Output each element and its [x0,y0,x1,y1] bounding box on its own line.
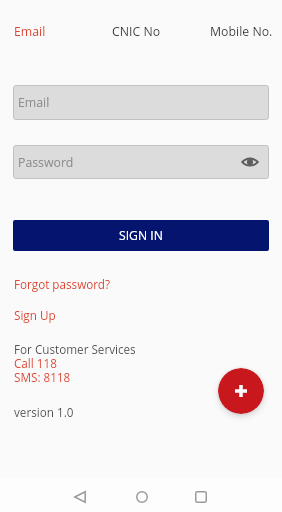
button[interactable]: Recent apps [183,479,219,512]
button[interactable]: Add [218,368,264,414]
button[interactable]: Mobile No. [210,23,273,40]
button[interactable]: SIGN IN [13,220,269,251]
staticText: CNIC No [112,23,161,40]
button[interactable]: CNIC No [112,23,161,40]
button[interactable]: SMS: 8118 [14,369,71,385]
staticText: Mobile No. [210,23,273,40]
staticText: Email [18,94,50,111]
button[interactable]: Call 118 [14,355,57,371]
staticText: Call 118 [14,355,57,371]
button[interactable]: Forgot password? [14,276,111,292]
staticText: Forgot password? [14,276,111,292]
staticText: SMS: 8118 [14,369,71,385]
button[interactable]: Sign Up [14,307,56,323]
staticText: Password [18,154,74,171]
button[interactable]: Password [13,145,269,179]
staticText: Sign Up [14,307,56,323]
button[interactable]: Email [13,85,269,120]
button[interactable]: Home [124,479,160,512]
button[interactable]: Email [14,23,46,40]
staticText: For Customer Services [14,341,136,357]
button[interactable]: Back [62,479,98,512]
staticText: SIGN IN [119,227,163,244]
staticText: version 1.0 [14,404,74,420]
button[interactable]: Show password [237,149,263,175]
staticText: Email [14,23,46,40]
